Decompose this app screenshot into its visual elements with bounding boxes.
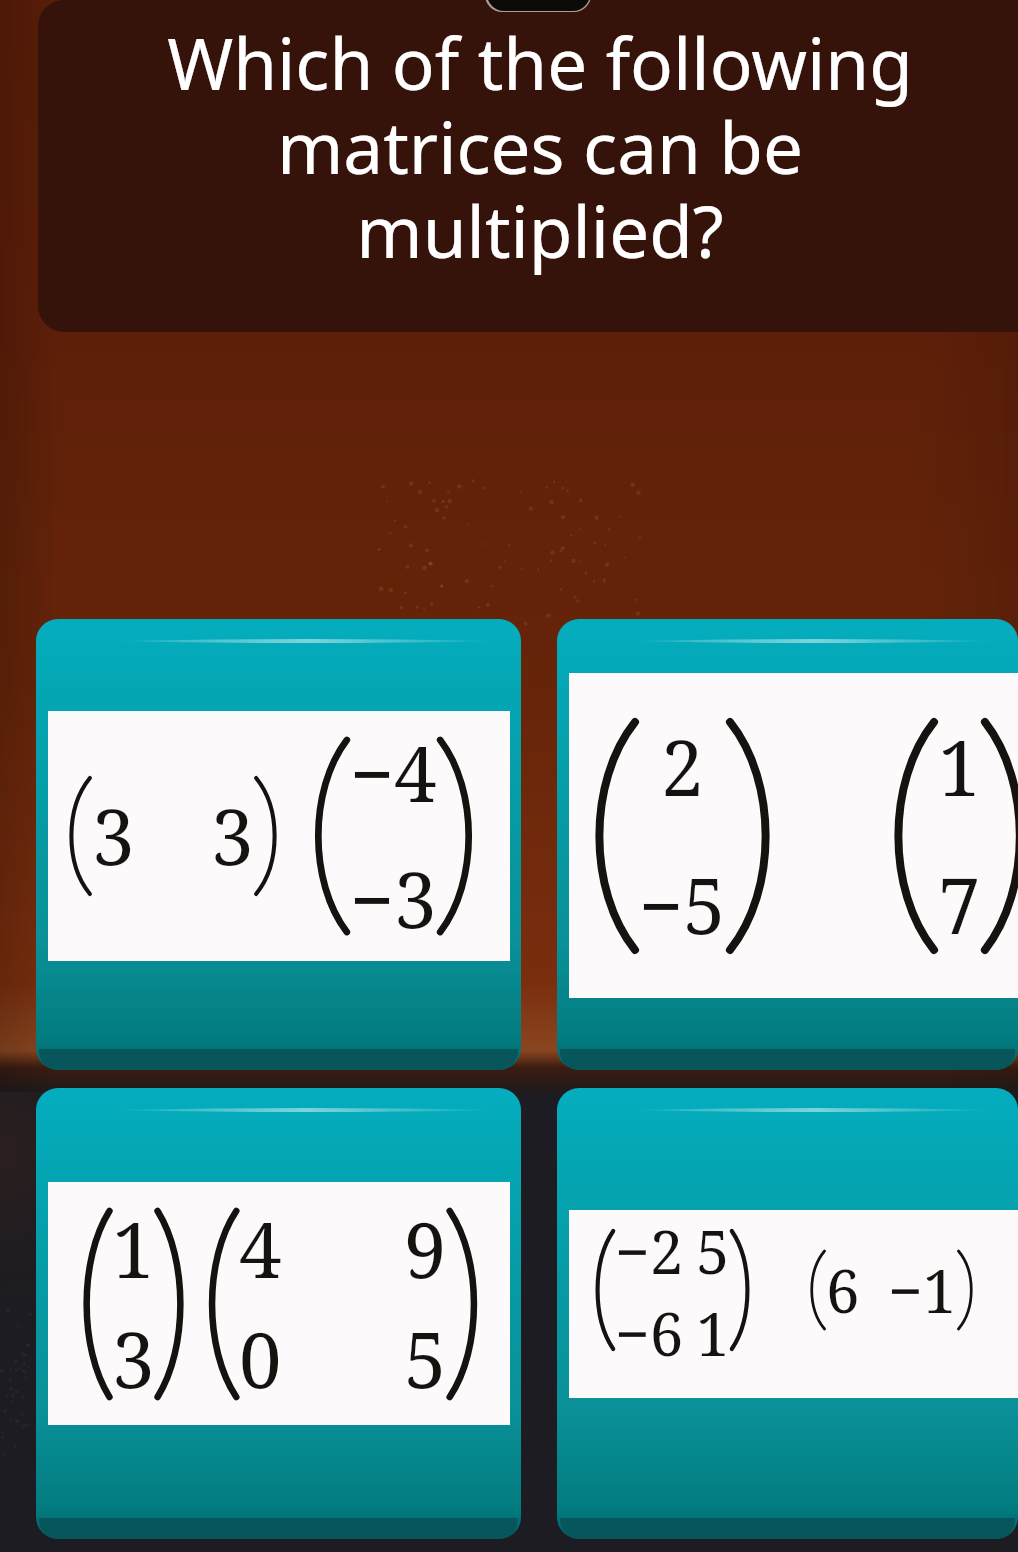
staticText: 3 [112, 1307, 155, 1411]
staticText: 5 [404, 1307, 447, 1411]
staticText: 7 [938, 853, 981, 957]
staticText: 9 [404, 1197, 447, 1301]
staticText: 3 [92, 784, 135, 888]
button[interactable]: Answer option D: matrix minus 2 5, minus… [557, 1088, 1018, 1539]
staticText: 1 [696, 1292, 730, 1370]
staticText: 4 [239, 1197, 282, 1301]
staticText: 1 [112, 1197, 155, 1301]
staticText: 1 [938, 715, 981, 819]
staticText: −1 [888, 1249, 957, 1331]
button[interactable]: Answer option B: column vector 2, minus … [557, 619, 1018, 1070]
staticText: 5 [696, 1210, 730, 1292]
staticText: 0 [239, 1307, 282, 1411]
staticText: 3 [211, 784, 254, 888]
staticText: −6 [615, 1292, 684, 1370]
staticText: −4 [350, 721, 437, 825]
button[interactable]: Answer option A: row vector 3 3 times co… [36, 619, 521, 1070]
staticText: −2 [615, 1210, 684, 1292]
staticText: 6 [826, 1249, 860, 1331]
staticText: −3 [350, 847, 437, 951]
staticText: 2 [661, 715, 704, 819]
button[interactable]: Answer option C: column vector 1, 3 time… [36, 1088, 521, 1539]
staticText: −5 [639, 853, 726, 957]
staticText: Which of the following matrices can be m… [150, 14, 930, 279]
